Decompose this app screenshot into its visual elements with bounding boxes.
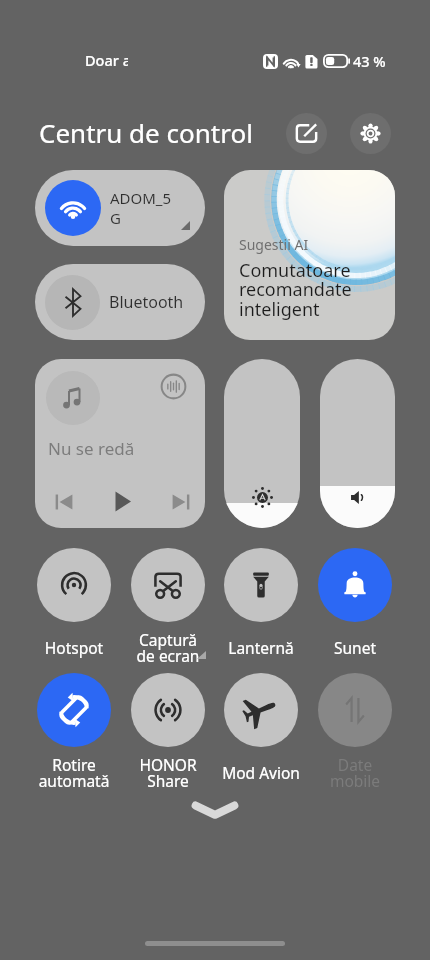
button[interactable]: Sugestii AI [224,170,395,340]
staticText: Bluetooth [109,291,184,313]
button[interactable]: Mod Avion [213,673,309,791]
button[interactable]: HONOR Share [120,673,216,791]
button[interactable]: ADOM_5G [35,170,205,246]
button[interactable]: Brightness [224,359,300,528]
button[interactable]: Captură de ecran [120,548,216,666]
button[interactable]: Next [162,483,199,520]
staticText: Sunet [307,637,403,658]
staticText: 43 % [353,51,386,71]
button[interactable]: Lanternă [213,548,309,666]
button[interactable]: Audio output [159,372,188,401]
button[interactable]: Sunet [307,548,403,666]
button[interactable]: Volume [320,359,395,528]
staticText: Comutatoare recomandate inteligent [239,258,352,322]
button[interactable]: Play [104,483,141,520]
button[interactable]: Audio output [35,359,205,528]
staticText: Captură de ecran [120,629,216,666]
button[interactable]: Edit [286,113,327,154]
button[interactable]: Settings [350,113,391,154]
button[interactable]: Bluetooth [35,264,205,340]
staticText: Mod Avion [213,762,309,783]
button[interactable]: Collapse [175,792,255,828]
staticText: Centru de control [39,115,253,150]
staticText: Date mobile [307,754,403,791]
button[interactable]: Date mobile [307,673,403,791]
staticText: ADOM_5G [110,188,180,228]
staticText: HONOR Share [120,754,216,791]
staticText: Sugestii AI [239,235,309,254]
button[interactable]: Hotspot [26,548,122,666]
button[interactable]: Rotire automată [26,673,122,791]
staticText: Lanternă [213,637,309,658]
staticText: Rotire automată [26,754,122,791]
staticText: Hotspot [26,637,122,658]
staticText: Doar acces [85,50,128,70]
staticText: Nu se redă [48,437,135,460]
button[interactable]: Previous [45,483,82,520]
